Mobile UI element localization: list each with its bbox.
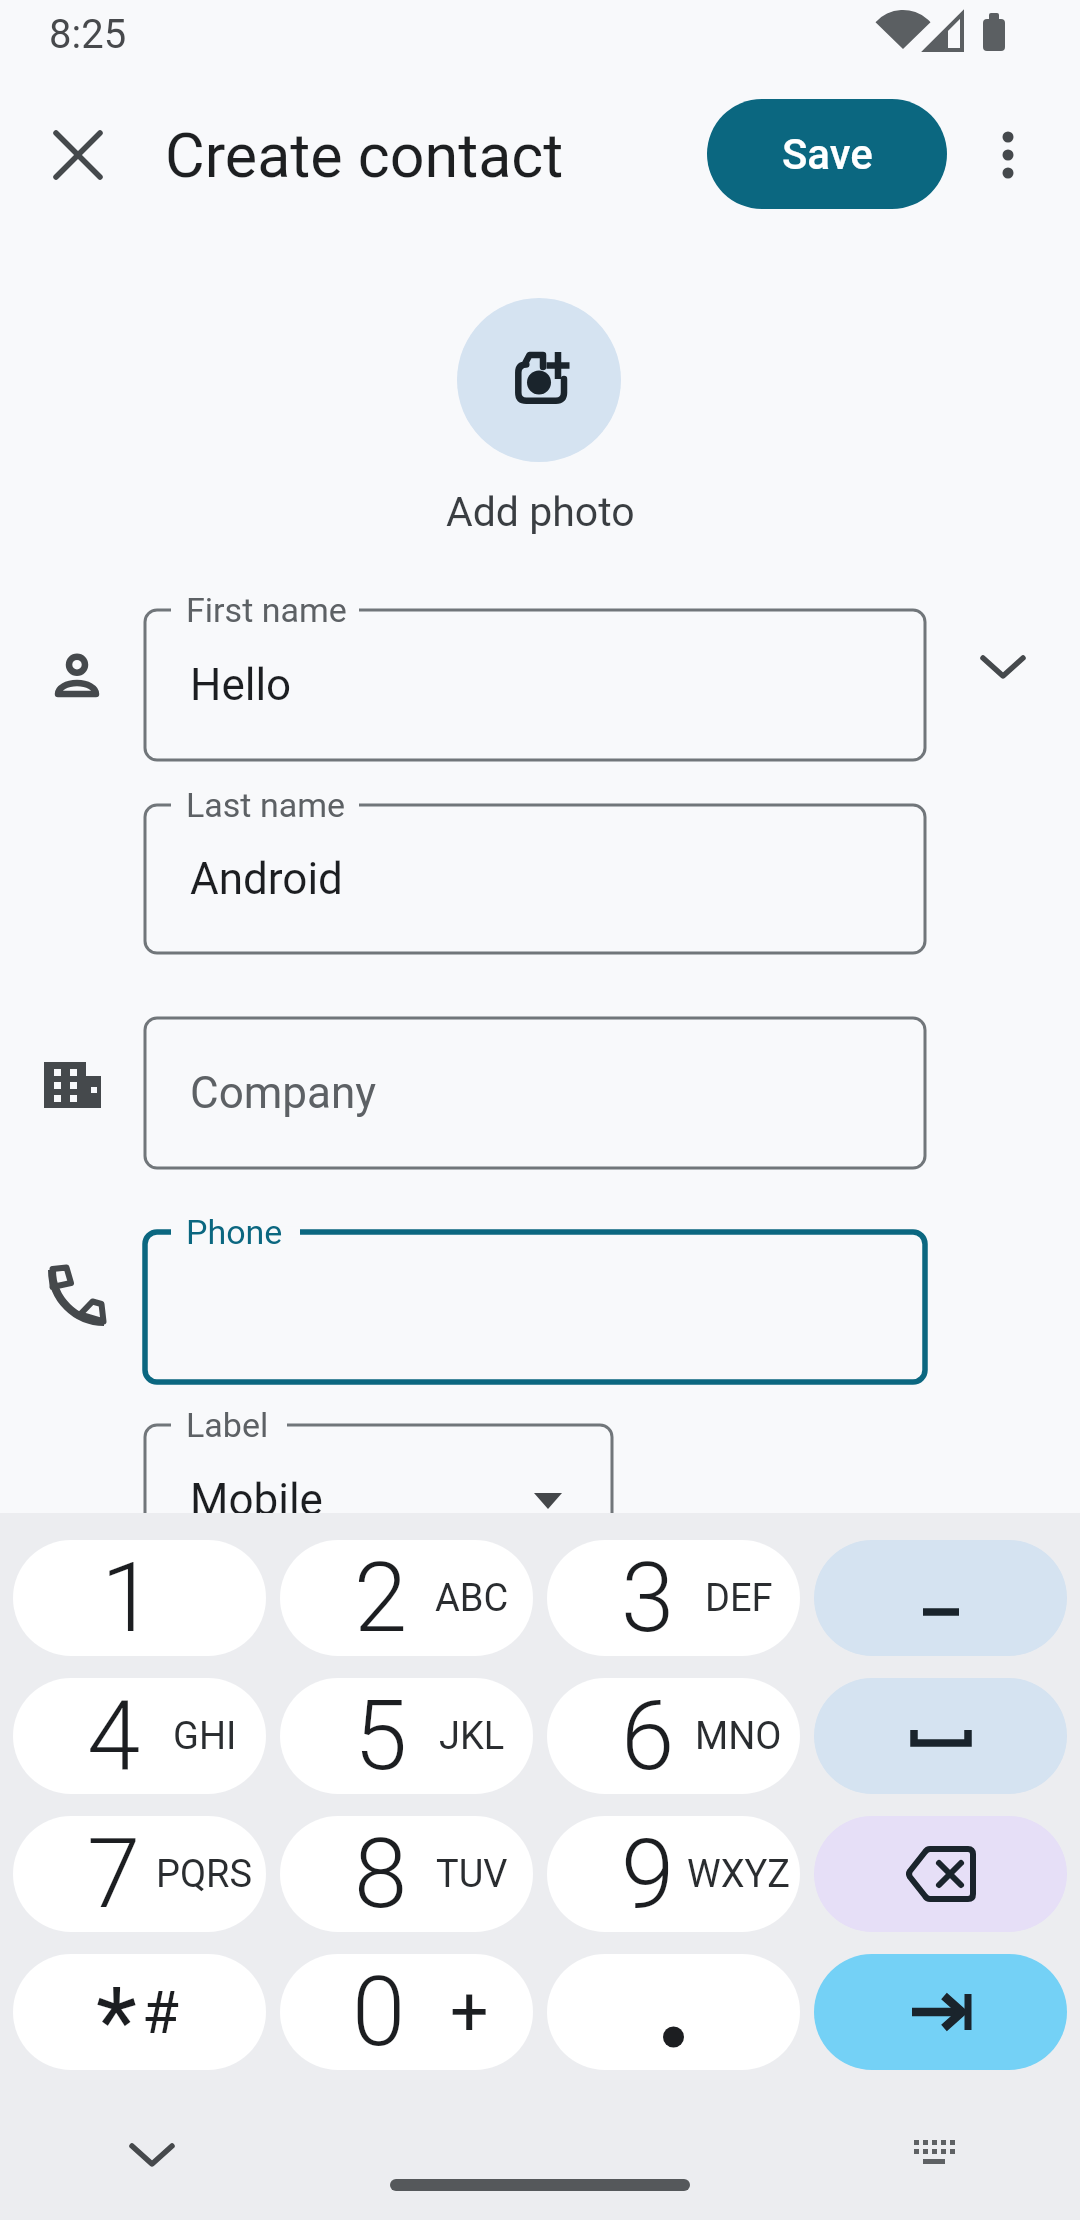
button[interactable]: 0 bbox=[280, 1954, 533, 2070]
button[interactable]: 5 bbox=[280, 1678, 533, 1794]
staticText: 7 bbox=[87, 1818, 141, 1931]
button[interactable] bbox=[547, 1954, 800, 2070]
staticText: MNO bbox=[695, 1714, 782, 1759]
button[interactable] bbox=[898, 2118, 970, 2190]
button[interactable]: 9 bbox=[547, 1816, 800, 1932]
button[interactable]: 8 bbox=[280, 1816, 533, 1932]
staticText: 4 bbox=[87, 1680, 141, 1793]
button[interactable] bbox=[972, 117, 1044, 193]
staticText: WXYZ bbox=[687, 1852, 791, 1897]
staticText: 2 bbox=[354, 1542, 408, 1655]
staticText: JKL bbox=[439, 1714, 505, 1759]
button[interactable] bbox=[457, 298, 621, 462]
staticText: Company bbox=[190, 1067, 377, 1119]
staticText: Android bbox=[190, 853, 343, 905]
staticText: 8 bbox=[354, 1818, 408, 1931]
button[interactable]: 2 bbox=[280, 1540, 533, 1656]
button[interactable] bbox=[967, 632, 1039, 704]
staticText: 0 bbox=[352, 1956, 406, 2069]
staticText: Label bbox=[186, 1405, 269, 1445]
staticText: Hello bbox=[190, 659, 292, 711]
button[interactable] bbox=[116, 2119, 188, 2191]
staticText: 6 bbox=[621, 1680, 675, 1793]
button[interactable]: 4 bbox=[13, 1678, 266, 1794]
staticText: 5 bbox=[354, 1680, 408, 1793]
staticText: TUV bbox=[436, 1852, 508, 1897]
button[interactable] bbox=[145, 1232, 925, 1382]
button[interactable] bbox=[814, 1678, 1067, 1794]
staticText: # bbox=[142, 1977, 179, 2047]
staticText: 8:25 bbox=[49, 11, 127, 58]
staticText: Add photo bbox=[446, 488, 635, 536]
button[interactable]: 1 bbox=[13, 1540, 266, 1656]
staticText: DEF bbox=[705, 1576, 773, 1621]
button[interactable] bbox=[814, 1954, 1067, 2070]
button[interactable] bbox=[814, 1816, 1067, 1932]
staticText: 3 bbox=[621, 1542, 675, 1655]
button[interactable]: 7 bbox=[13, 1816, 266, 1932]
staticText: Create contact bbox=[165, 120, 564, 191]
staticText: 1 bbox=[101, 1542, 155, 1655]
staticText: Mobile bbox=[190, 1474, 323, 1526]
button[interactable]: Android bbox=[145, 805, 925, 953]
staticText: PQRS bbox=[156, 1852, 253, 1897]
staticText: Last name bbox=[186, 785, 346, 825]
button[interactable]: 3 bbox=[547, 1540, 800, 1656]
staticText: GHI bbox=[173, 1714, 237, 1759]
staticText: + bbox=[450, 1972, 489, 2052]
staticText: * bbox=[96, 1966, 137, 2070]
button[interactable]: Hello bbox=[145, 610, 925, 760]
button[interactable]: Save bbox=[707, 99, 947, 209]
staticText: First name bbox=[186, 590, 347, 630]
button[interactable]: Company bbox=[145, 1018, 925, 1168]
button[interactable] bbox=[42, 119, 114, 191]
staticText: Phone bbox=[186, 1212, 283, 1252]
button[interactable]: 6 bbox=[547, 1678, 800, 1794]
staticText: Save bbox=[782, 130, 873, 179]
button[interactable]: Mobile bbox=[145, 1425, 612, 1575]
staticText: ABC bbox=[435, 1576, 509, 1621]
button[interactable]: * bbox=[13, 1954, 266, 2070]
staticText: 9 bbox=[621, 1818, 675, 1931]
button[interactable] bbox=[814, 1540, 1067, 1656]
